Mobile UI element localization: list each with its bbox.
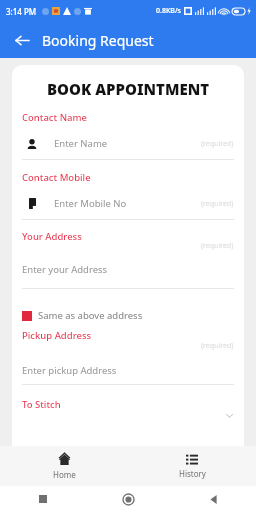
staticText: (required) bbox=[201, 199, 234, 209]
staticText: Same as above address bbox=[38, 309, 143, 322]
staticText: 3:14 PM bbox=[6, 6, 37, 17]
staticText: Pickup Address bbox=[22, 329, 92, 342]
staticText: (required) bbox=[201, 139, 234, 149]
staticText: (required) bbox=[201, 241, 234, 251]
staticText: Booking Request bbox=[42, 31, 154, 50]
staticText: History bbox=[179, 468, 206, 479]
button[interactable]: Enter Mobile No bbox=[22, 197, 234, 220]
button[interactable]: Back bbox=[8, 26, 36, 54]
staticText: (required) bbox=[201, 341, 234, 351]
staticText: To Stitch bbox=[22, 398, 61, 411]
staticText: Your Address bbox=[22, 230, 82, 243]
staticText: Enter your Address bbox=[22, 263, 108, 276]
button[interactable]: Enter your Address bbox=[22, 263, 234, 289]
button[interactable]: Home bbox=[0, 446, 128, 486]
button[interactable]: Enter pickup Address bbox=[22, 364, 234, 385]
button[interactable]: To Stitch bbox=[22, 398, 234, 420]
staticText: Contact Mobile bbox=[22, 171, 91, 184]
staticText: BOOK APPOINTMENT bbox=[22, 79, 234, 99]
button[interactable]: Same as above address bbox=[22, 309, 234, 322]
staticText: Home bbox=[53, 469, 76, 480]
staticText: Enter Name bbox=[54, 137, 108, 150]
button[interactable]: History bbox=[128, 446, 256, 486]
staticText: 0.8KB/s bbox=[156, 6, 182, 16]
staticText: Enter pickup Address bbox=[22, 364, 117, 377]
button[interactable]: Enter Name bbox=[22, 137, 234, 160]
staticText: Contact Name bbox=[22, 111, 87, 124]
staticText: Enter Mobile No bbox=[54, 197, 127, 210]
